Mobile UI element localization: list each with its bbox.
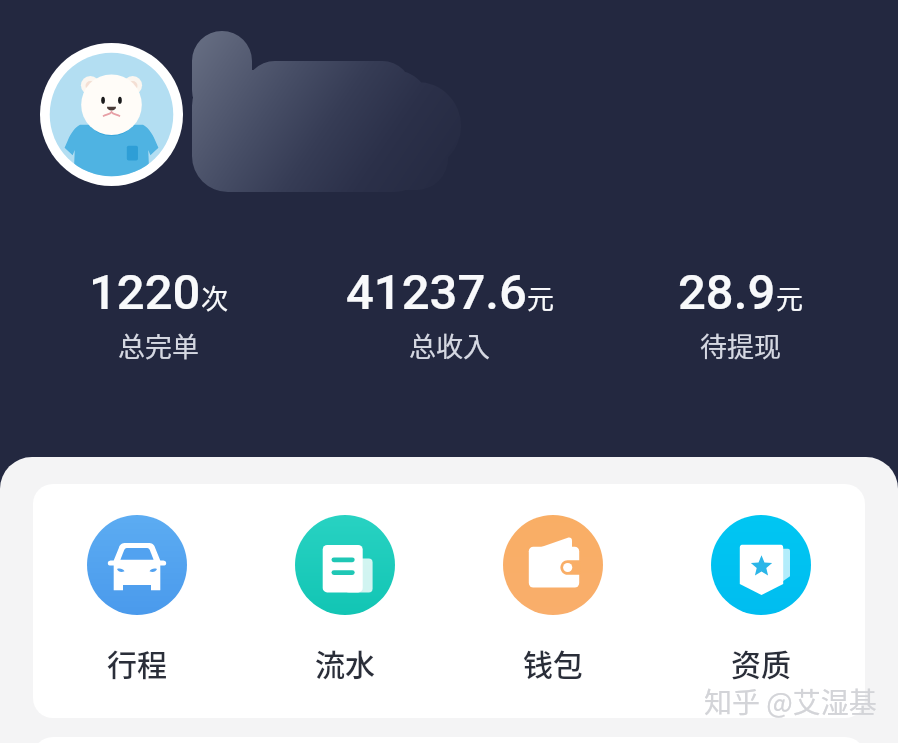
staticText: 总收入 <box>409 326 490 365</box>
staticText: 知乎 @艾湿基 <box>704 681 877 722</box>
button[interactable]: 28.9 <box>595 264 886 365</box>
staticText: 次 <box>201 278 228 317</box>
staticText: 流水 <box>315 641 375 684</box>
button[interactable]: Profile avatar <box>40 43 183 186</box>
button[interactable]: 1220 <box>12 264 304 365</box>
staticText: 1220 <box>89 264 201 321</box>
staticText: 28.9 <box>678 264 776 321</box>
button[interactable]: 资质 <box>657 484 865 684</box>
staticText: 行程 <box>107 641 167 684</box>
staticText: 元 <box>776 278 803 317</box>
staticText: 待提现 <box>700 326 781 365</box>
staticText: 钱包 <box>523 641 583 684</box>
staticText: 元 <box>527 278 554 317</box>
button[interactable]: 流水 <box>241 484 449 684</box>
button[interactable]: 行程 <box>33 484 241 684</box>
button[interactable]: 钱包 <box>449 484 657 684</box>
staticText: 总完单 <box>118 326 199 365</box>
staticText: 41237.6 <box>346 264 527 321</box>
button[interactable]: 41237.6 <box>304 264 595 365</box>
staticText: 资质 <box>731 641 791 684</box>
